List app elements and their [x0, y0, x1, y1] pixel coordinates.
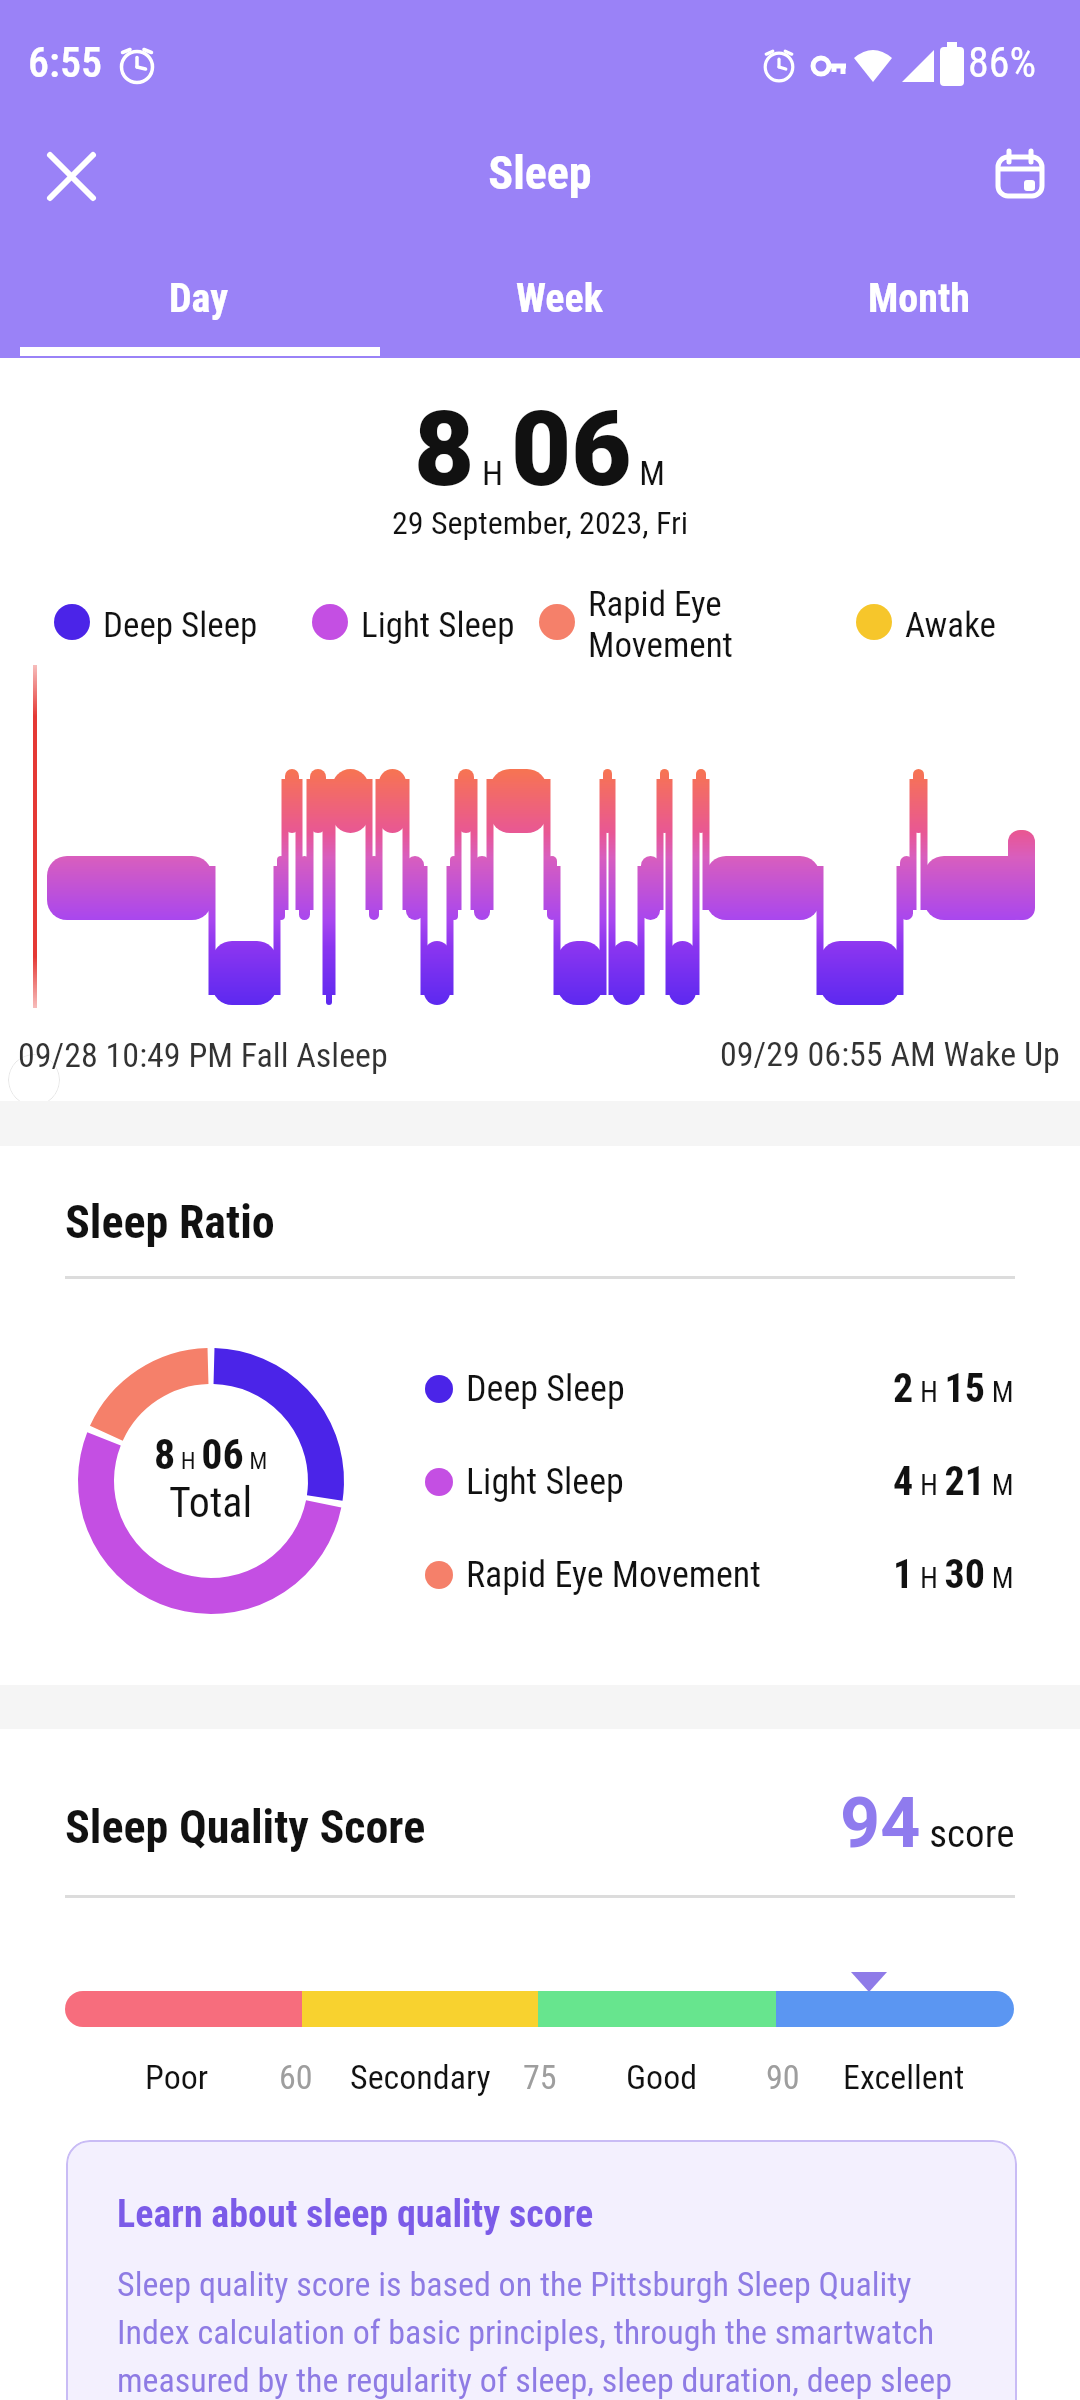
staticText: Poor — [145, 2057, 209, 2097]
staticText: 09/28 10:49 PM Fall Asleep — [18, 1035, 388, 1075]
button[interactable]: Week — [379, 268, 739, 328]
button[interactable]: Learn about sleep quality score — [66, 2140, 1017, 2400]
staticText: Sleep Ratio — [65, 1195, 275, 1249]
staticText: Excellent — [843, 2057, 965, 2097]
staticText: 09/29 06:55 AM Wake Up — [720, 1034, 1060, 1074]
staticText: Good — [626, 2057, 698, 2097]
staticText: 6:55 — [28, 38, 102, 87]
staticText: 1 H 30 M — [893, 1551, 1014, 1598]
button[interactable] — [984, 138, 1056, 210]
staticText: Sleep — [0, 146, 1080, 200]
staticText: Rapid Eye Movement — [588, 584, 733, 665]
staticText: Sleep Quality Score — [65, 1800, 426, 1854]
staticText: Deep Sleep — [466, 1368, 625, 1410]
staticText: 29 September, 2023, Fri — [0, 504, 1080, 542]
staticText: Awake — [905, 605, 996, 646]
button[interactable]: Day — [19, 268, 379, 328]
staticText: 8 H 06 M — [154, 1430, 268, 1479]
staticText: 86% — [968, 38, 1037, 87]
staticText: Rapid Eye Movement — [466, 1554, 761, 1596]
staticText: Total — [169, 1478, 253, 1527]
staticText: 4 H 21 M — [893, 1458, 1014, 1505]
staticText: Deep Sleep — [103, 605, 258, 646]
staticText: 60 — [279, 2057, 313, 2097]
staticText: 75 — [523, 2057, 557, 2097]
staticText: 90 — [766, 2057, 800, 2097]
staticText: Month — [868, 275, 970, 322]
staticText: Week — [516, 275, 603, 322]
staticText: Sleep quality score is based on the Pitt… — [117, 2264, 952, 2400]
staticText: Light Sleep — [466, 1461, 624, 1503]
staticText: Day — [169, 275, 229, 322]
staticText: 2 H 15 M — [893, 1365, 1014, 1412]
staticText: Secondary — [350, 2057, 491, 2097]
button[interactable]: Month — [739, 268, 1080, 328]
staticText: 94 score — [840, 1782, 1015, 1864]
staticText: Light Sleep — [361, 605, 515, 646]
staticText: Learn about sleep quality score — [117, 2192, 594, 2237]
staticText: 8 H 06 M — [414, 389, 666, 511]
button[interactable] — [35, 140, 107, 212]
